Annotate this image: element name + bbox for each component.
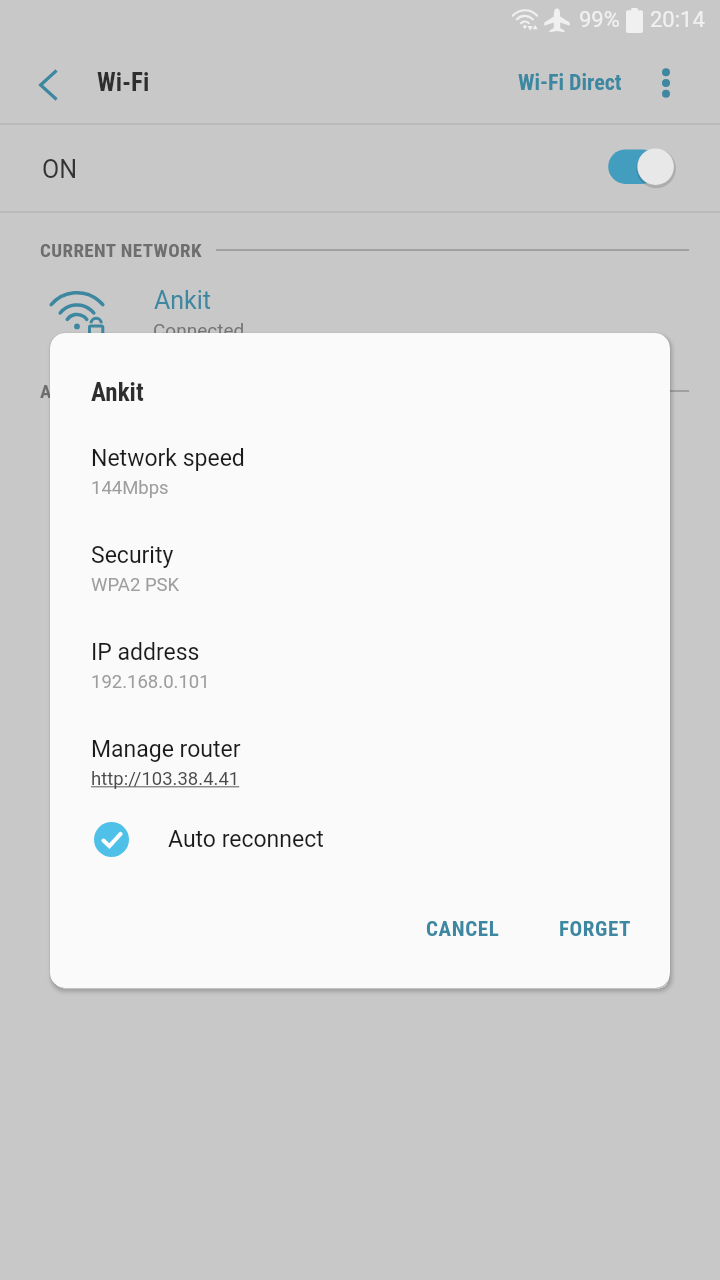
staticText: 20:14 bbox=[650, 7, 705, 33]
staticText: CANCEL bbox=[426, 917, 500, 942]
button[interactable]: CANCEL bbox=[406, 901, 520, 958]
staticText: IP address bbox=[91, 639, 200, 666]
staticText: Security bbox=[91, 542, 174, 569]
button[interactable]: FORGET bbox=[539, 901, 652, 958]
staticText: ON bbox=[42, 155, 78, 184]
staticText: Ankit bbox=[154, 286, 212, 315]
staticText: FORGET bbox=[559, 917, 632, 942]
staticText: Auto reconnect bbox=[168, 826, 324, 853]
staticText: Connected bbox=[153, 319, 245, 341]
staticText: AVAILABLE NETWORKS bbox=[40, 380, 228, 402]
staticText: 192.168.0.101 bbox=[91, 671, 210, 693]
staticText: CURRENT NETWORK bbox=[40, 239, 202, 261]
staticText: Manage router bbox=[91, 736, 241, 763]
staticText: 144Mbps bbox=[91, 477, 169, 499]
button[interactable]: Ankit bbox=[0, 272, 720, 382]
staticText: Network speed bbox=[91, 445, 245, 472]
button[interactable]: Auto reconnect bbox=[50, 811, 670, 867]
button[interactable]: Navigate up bbox=[19, 55, 75, 111]
staticText: WPA2 PSK bbox=[91, 574, 180, 596]
button[interactable]: Manage router bbox=[91, 736, 241, 790]
staticText: http://103.38.4.41 bbox=[91, 768, 240, 790]
staticText: Wi-Fi Direct bbox=[518, 70, 622, 96]
button[interactable]: Wi-Fi Direct bbox=[498, 52, 642, 114]
staticText: Ankit bbox=[91, 378, 144, 407]
staticText: Wi-Fi bbox=[97, 68, 150, 97]
button[interactable]: ON bbox=[0, 124, 720, 211]
button[interactable]: More options bbox=[638, 55, 694, 111]
staticText: 99% bbox=[579, 7, 620, 33]
